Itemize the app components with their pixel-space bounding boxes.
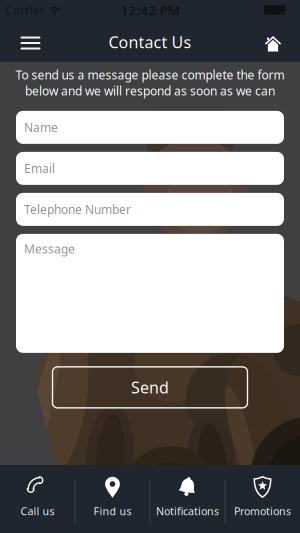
button[interactable]: Send [52, 367, 247, 408]
staticText: below and we will respond as soon as we … [25, 83, 275, 99]
button[interactable]: Telephone Number [16, 193, 284, 226]
button[interactable] [265, 24, 300, 57]
staticText: Promotions [234, 504, 291, 518]
staticText: Send [131, 377, 169, 398]
button[interactable]: Email [16, 152, 284, 185]
button[interactable] [0, 25, 40, 56]
button[interactable]: Find us [75, 465, 150, 533]
button[interactable]: Name [16, 111, 284, 144]
staticText: Message [24, 241, 75, 257]
staticText: Contact Us [108, 31, 191, 53]
button[interactable]: Call us [0, 465, 75, 533]
staticText: Email [24, 160, 55, 176]
button[interactable]: Promotions [225, 465, 300, 533]
staticText: To send us a message please complete the… [15, 67, 284, 83]
button[interactable]: Notifications [150, 465, 225, 533]
staticText: Carrier [5, 2, 45, 18]
staticText: Find us [93, 504, 131, 518]
staticText: 12:42 PM [120, 1, 179, 19]
staticText: Notifications [156, 504, 219, 518]
staticText: Call us [20, 504, 54, 518]
staticText: Telephone Number [24, 201, 131, 217]
staticText: Name [24, 119, 58, 135]
button[interactable]: Message [16, 234, 284, 353]
